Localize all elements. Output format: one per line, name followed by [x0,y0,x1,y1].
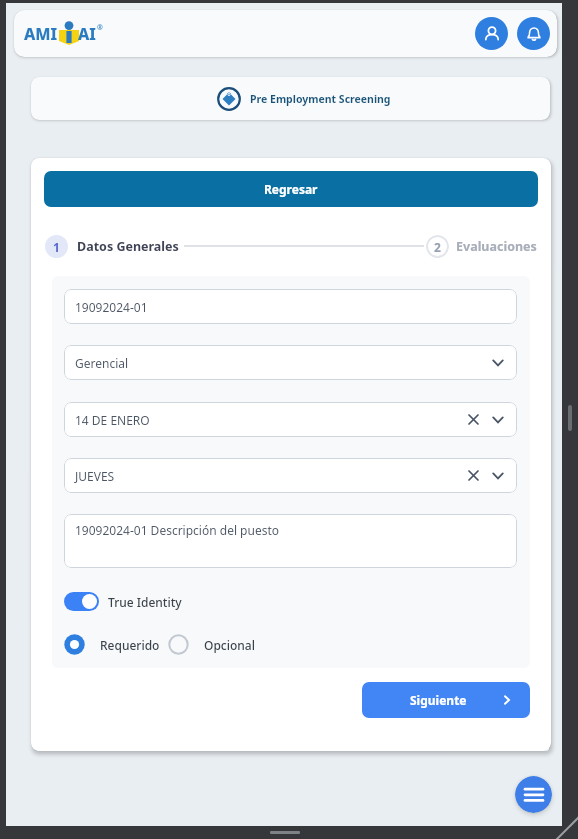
staticText: Gerencial [75,355,129,371]
button[interactable] [517,17,550,50]
button[interactable]: 19092024-01 Descripción del puesto [64,514,517,568]
button[interactable]: True Identity [64,592,182,611]
staticText: Evaluaciones [456,238,537,255]
button[interactable]: 19092024-01 [64,289,517,324]
staticText: 19092024-01 [75,299,148,315]
staticText: Datos Generales [77,238,179,255]
staticText: 19092024-01 Descripción del puesto [75,522,280,538]
staticText: Requerido [100,637,160,653]
staticText: Regresar [264,181,318,197]
staticText: True Identity [108,594,182,610]
staticText: Pre Employment Screening [250,92,391,106]
button[interactable]: JUEVES [64,458,517,493]
staticText: 14 DE ENERO [75,412,150,428]
button[interactable]: 14 DE ENERO [64,402,517,437]
staticText: Siguiente [410,692,467,708]
button[interactable]: Siguiente [362,682,530,718]
staticText: JUEVES [75,468,115,484]
staticText: 1 [53,239,60,255]
button[interactable] [475,17,508,50]
button[interactable] [515,776,552,813]
staticText: AMI [24,23,58,45]
staticText: ® [97,23,103,33]
button[interactable]: Pre Employment Screening [31,77,550,120]
button[interactable]: Requerido [64,634,160,655]
button[interactable]: Gerencial [64,345,517,380]
staticText: 2 [434,239,441,255]
button[interactable]: Opcional [168,634,255,655]
staticText: AI [78,23,96,45]
staticText: Opcional [204,637,255,653]
button[interactable]: Regresar [44,171,538,207]
button[interactable]: AMI [24,21,102,47]
